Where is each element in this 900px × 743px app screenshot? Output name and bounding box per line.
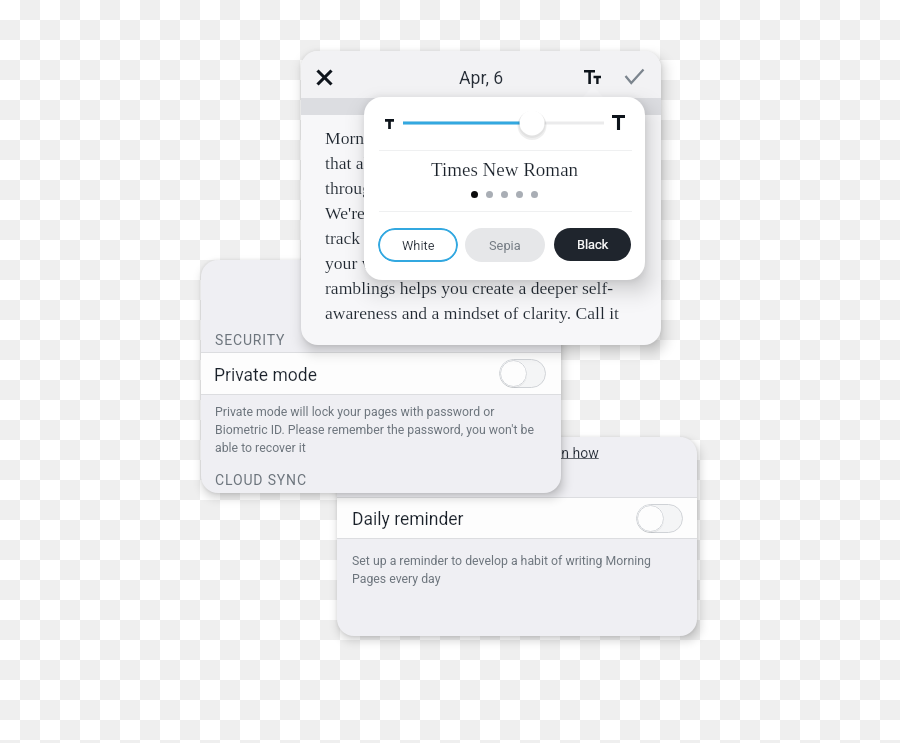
staticText: Apr, 6 <box>459 68 504 89</box>
button[interactable]: Daily reminder <box>337 498 697 538</box>
staticText: Biometric ID. Please remember the passwo… <box>215 423 534 437</box>
staticText: Morning Pages are a daily practice of th… <box>325 128 619 323</box>
button[interactable]: Toggle switch <box>636 504 684 534</box>
button[interactable]: Black <box>554 228 631 261</box>
button[interactable]: Toggle switch <box>499 359 547 389</box>
button[interactable]: Close <box>301 51 349 98</box>
staticText: SECURITY <box>215 332 286 348</box>
button[interactable]: Text formatting <box>560 51 606 98</box>
staticText: Private mode will lock your pages with p… <box>215 405 495 419</box>
staticText: able to recover it <box>215 441 306 455</box>
button[interactable]: Private mode <box>201 353 561 394</box>
button[interactable]: Done <box>606 51 661 98</box>
staticText: Sepia <box>489 238 521 253</box>
staticText: Daily reminder <box>352 509 464 530</box>
staticText: Pages every day <box>352 572 441 586</box>
staticText: Set up a reminder to develop a habit of … <box>352 554 651 568</box>
staticText: Private mode <box>214 365 317 386</box>
button[interactable]: Sepia <box>465 228 545 262</box>
staticText: Learn how <box>534 445 599 461</box>
staticText: Times New Roman <box>431 159 579 180</box>
staticText: White <box>402 238 435 253</box>
button[interactable]: White <box>378 228 458 262</box>
staticText: CLOUD SYNC <box>215 472 307 488</box>
staticText: Black <box>577 237 609 252</box>
button[interactable]: Learn how <box>534 445 599 461</box>
